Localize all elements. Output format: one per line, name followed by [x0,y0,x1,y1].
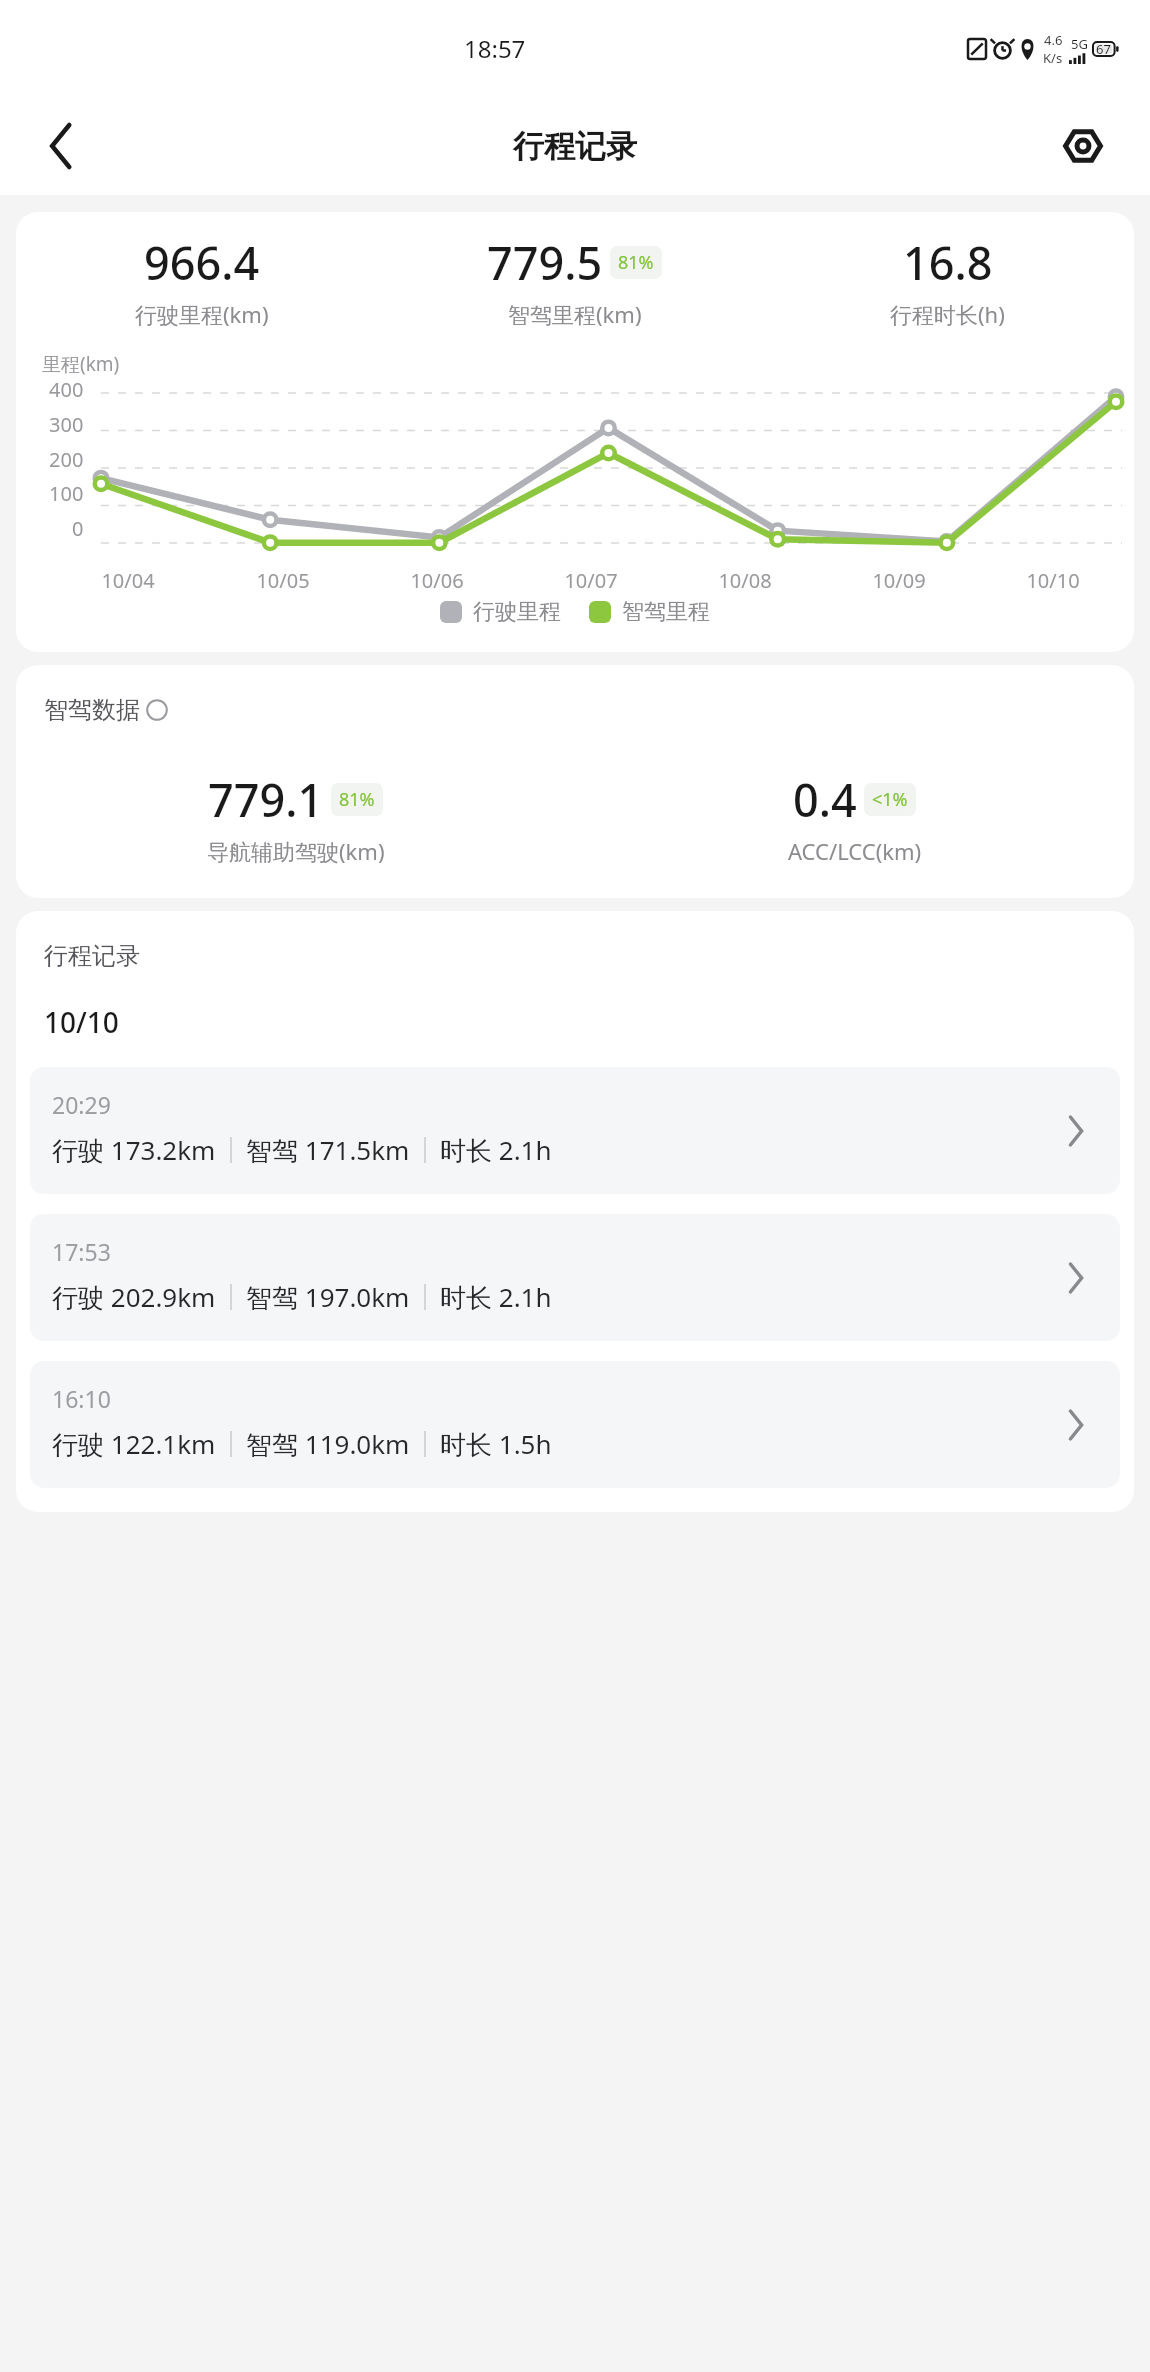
staticText: 4.6 [1044,31,1063,49]
staticText: 行程记录 [44,941,140,971]
staticText: 时长 1.5h [440,1426,552,1462]
staticText: 400 [49,376,84,403]
staticText: 智驾数据 [44,695,140,725]
staticText: 智驾里程 [622,598,710,626]
staticText: 行驶里程(km) [135,299,269,329]
staticText: 行驶 122.1km [52,1426,216,1462]
staticText: 10/07 [564,567,618,594]
staticText: 里程(km) [42,351,120,377]
staticText: 行程记录 [513,127,637,166]
staticText: 10/09 [872,567,926,594]
other: Help [146,699,168,721]
staticText: 智驾里程(km) [508,299,642,329]
staticText: 18:57 [464,32,526,65]
staticText: 10/08 [718,567,772,594]
staticText: ACC/LCC(km) [788,836,922,866]
staticText: 导航辅助驾驶(km) [207,836,385,866]
staticText: 智驾 171.5km [246,1132,410,1168]
staticText: 行驶 173.2km [52,1132,216,1168]
staticText: 16:10 [52,1383,111,1414]
staticText: 行驶里程 [473,598,561,626]
button[interactable]: Settings [1056,119,1110,173]
staticText: 0.4 [793,769,857,830]
button[interactable]: 智驾里程 [589,598,710,626]
staticText: 81% [618,250,654,275]
staticText: 779.5 [487,232,603,293]
staticText: 智驾 119.0km [246,1426,410,1462]
staticText: 17:53 [52,1236,111,1267]
button[interactable]: 行驶里程 [440,598,561,626]
staticText: 智驾 197.0km [246,1279,410,1315]
button[interactable]: 17:53 [30,1214,1120,1341]
staticText: 200 [49,446,84,473]
staticText: 行驶 202.9km [52,1279,216,1315]
staticText: 行程时长(h) [890,299,1005,329]
staticText: <1% [872,787,908,812]
staticText: 10/06 [410,567,464,594]
staticText: 20:29 [52,1089,111,1120]
staticText: 5G [1071,35,1088,53]
staticText: 0 [72,515,84,542]
button[interactable]: 智驾数据 [44,695,168,725]
button[interactable]: Back [36,120,88,172]
staticText: 779.1 [208,769,324,830]
staticText: 300 [49,411,84,438]
button[interactable]: 16:10 [30,1361,1120,1488]
staticText: 10/05 [256,567,310,594]
staticText: 16.8 [903,232,993,293]
staticText: 966.4 [144,232,260,293]
staticText: 时长 2.1h [440,1132,552,1168]
staticText: K/s [1043,49,1063,67]
staticText: 10/10 [1026,567,1080,594]
staticText: 67 [1096,40,1111,58]
staticText: 100 [49,480,84,507]
staticText: 10/04 [101,567,155,594]
staticText: 时长 2.1h [440,1279,552,1315]
staticText: 81% [339,787,375,812]
button[interactable]: 20:29 [30,1067,1120,1194]
staticText: 10/10 [44,1003,119,1041]
